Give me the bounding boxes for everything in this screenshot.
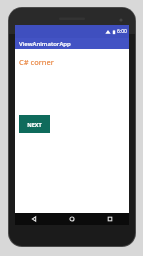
staticText: C# corner bbox=[19, 57, 54, 67]
button[interactable]: NEXT bbox=[19, 115, 50, 133]
staticText: NEXT bbox=[27, 121, 42, 128]
staticText: 6:00 bbox=[117, 28, 127, 35]
button[interactable]: Home bbox=[53, 213, 91, 225]
button[interactable]: Back bbox=[15, 213, 53, 225]
button[interactable]: Recent apps bbox=[91, 213, 129, 225]
staticText: ViewAnimatorApp bbox=[19, 40, 71, 48]
